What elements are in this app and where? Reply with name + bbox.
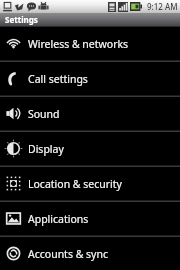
button[interactable]: Display [0, 132, 180, 165]
button[interactable]: Applications [0, 202, 180, 235]
staticText: Display [28, 142, 64, 156]
staticText: Applications [28, 212, 89, 226]
staticText: Location & security [28, 177, 122, 191]
staticText: Call settings [28, 72, 88, 86]
staticText: Settings [5, 14, 38, 25]
button[interactable]: Wireless & networks [0, 27, 180, 60]
button[interactable]: Location & security [0, 167, 180, 200]
button[interactable]: Accounts & sync [0, 237, 180, 270]
button[interactable]: Sound [0, 97, 180, 130]
staticText: Accounts & sync [28, 247, 108, 261]
staticText: 9:12 AM [147, 1, 178, 12]
staticText: Sound [28, 107, 60, 121]
button[interactable]: Call settings [0, 62, 180, 95]
staticText: Wireless & networks [28, 37, 129, 51]
